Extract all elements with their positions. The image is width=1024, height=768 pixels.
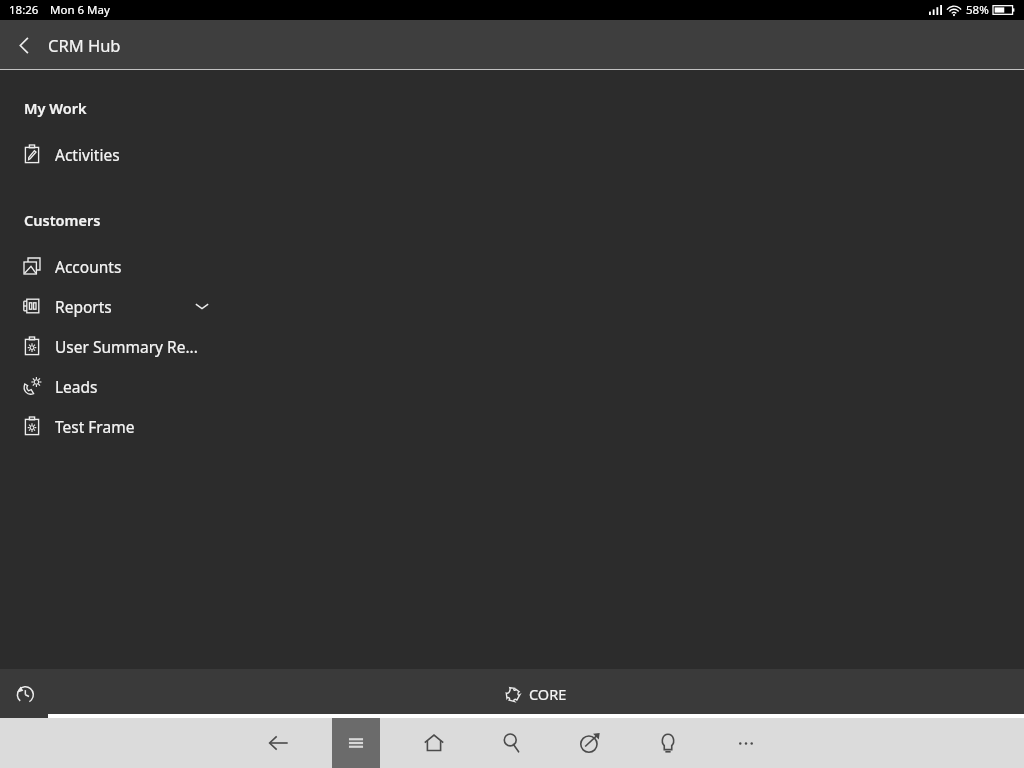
staticText: CORE bbox=[529, 684, 567, 704]
button[interactable]: Reports bbox=[0, 286, 1024, 326]
button[interactable]: Cortana bbox=[566, 719, 614, 767]
staticText: Customers bbox=[24, 210, 101, 230]
button[interactable]: Tips bbox=[644, 719, 692, 767]
button[interactable]: Activities bbox=[0, 134, 1024, 174]
staticText: Accounts bbox=[55, 256, 122, 277]
staticText: My Work bbox=[24, 98, 87, 118]
staticText: Mon 6 May bbox=[50, 2, 110, 18]
button[interactable]: CORE bbox=[48, 669, 1024, 718]
button[interactable]: Accounts bbox=[0, 246, 1024, 286]
staticText: 18:26 bbox=[9, 2, 39, 18]
button[interactable]: More options bbox=[722, 719, 770, 767]
button[interactable]: Back bbox=[254, 719, 302, 767]
button[interactable]: Recent bbox=[0, 669, 48, 718]
button[interactable]: Search bbox=[488, 719, 536, 767]
staticText: Reports bbox=[55, 296, 112, 317]
staticText: 58% bbox=[966, 2, 989, 18]
staticText: User Summary Re... bbox=[55, 336, 198, 357]
button[interactable]: Home bbox=[410, 719, 458, 767]
button[interactable]: Test Frame bbox=[0, 406, 1024, 446]
staticText: CRM Hub bbox=[48, 34, 121, 56]
button[interactable]: Leads bbox=[0, 366, 1024, 406]
staticText: Test Frame bbox=[55, 416, 135, 437]
staticText: Activities bbox=[55, 144, 120, 165]
button[interactable]: Back bbox=[0, 21, 48, 69]
button[interactable]: Menu bbox=[332, 719, 380, 767]
staticText: Leads bbox=[55, 376, 98, 397]
button[interactable]: User Summary Re... bbox=[0, 326, 1024, 366]
